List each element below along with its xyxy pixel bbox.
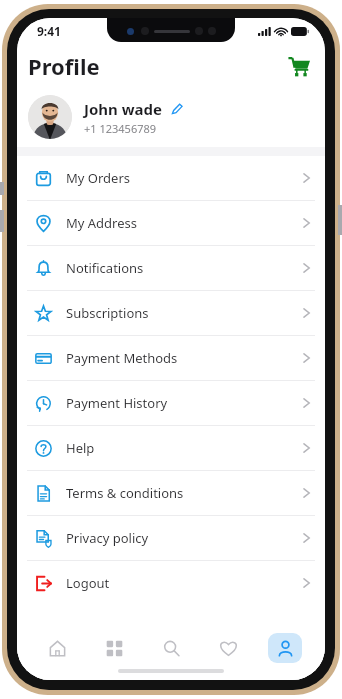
staticText: Privacy policy (66, 529, 149, 547)
staticText: Payment Methods (66, 349, 178, 367)
button[interactable]: John wade (17, 87, 325, 147)
button[interactable]: Categories (97, 633, 131, 663)
staticText: Notifications (66, 259, 144, 277)
staticText: Help (66, 439, 95, 457)
button[interactable]: Notifications (17, 246, 325, 290)
staticText: My Orders (66, 169, 130, 187)
button[interactable]: Profile (268, 633, 302, 663)
button[interactable]: Payment History (17, 381, 325, 425)
button[interactable]: Home (40, 633, 74, 663)
button[interactable]: Search (154, 633, 188, 663)
button[interactable]: Subscriptions (17, 291, 325, 335)
staticText: +1 123456789 (84, 121, 157, 136)
button[interactable]: My Orders (17, 156, 325, 200)
button[interactable]: Help (17, 426, 325, 470)
button[interactable]: My Address (17, 201, 325, 245)
staticText: John wade (84, 99, 163, 119)
staticText: My Address (66, 214, 137, 232)
staticText: Subscriptions (66, 304, 149, 322)
button[interactable]: Logout (17, 561, 325, 605)
button[interactable]: Favorites (211, 633, 245, 663)
button[interactable]: Edit name (169, 101, 185, 117)
staticText: Profile (28, 51, 100, 81)
button[interactable]: Payment Methods (17, 336, 325, 380)
staticText: Logout (66, 574, 110, 592)
staticText: Terms & conditions (66, 484, 184, 502)
button[interactable]: Privacy policy (17, 516, 325, 560)
staticText: Payment History (66, 394, 168, 412)
staticText: 9:41 (37, 23, 61, 39)
button[interactable]: Terms & conditions (17, 471, 325, 515)
button[interactable]: Cart (282, 49, 316, 83)
